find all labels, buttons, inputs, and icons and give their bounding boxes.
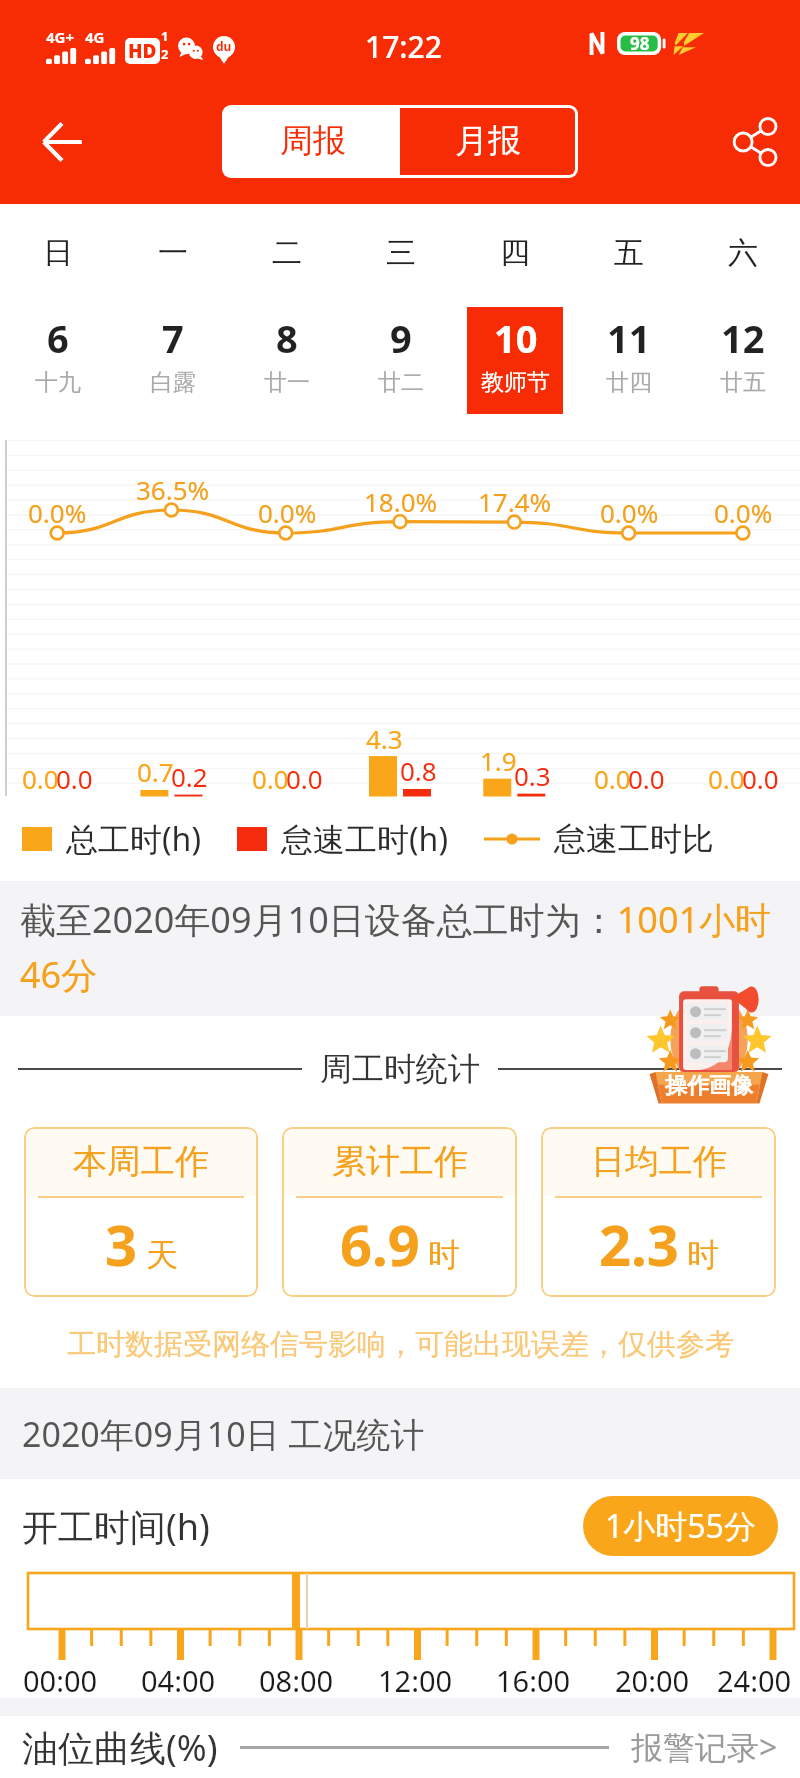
button[interactable]: 日均工作: [541, 1127, 776, 1297]
staticText: 0.0: [56, 761, 93, 796]
staticText: 3: [105, 1206, 138, 1282]
button[interactable]: 7: [125, 307, 221, 414]
staticText: 廿一: [264, 368, 310, 397]
staticText: 总工时(h): [66, 817, 201, 861]
staticText: 0.0: [742, 761, 779, 796]
staticText: 04:00: [141, 1661, 216, 1700]
staticText: 0.7: [137, 754, 174, 789]
staticText: 9: [390, 312, 412, 364]
staticText: 0.0%: [714, 495, 773, 530]
staticText: 6.9: [340, 1206, 420, 1282]
staticText: 白露: [150, 368, 196, 397]
staticText: 六: [728, 234, 758, 272]
staticText: 十九: [35, 368, 81, 397]
staticText: 廿四: [606, 368, 652, 397]
staticText: 截至2020年09月10日设备总工时为：1001小时46分: [20, 895, 785, 999]
staticText: 开工时间(h): [22, 1502, 210, 1551]
staticText: 操作画像: [665, 1072, 753, 1100]
staticText: 教师节: [481, 368, 550, 397]
staticText: 工时数据受网络信号影响，可能出现误差，仅供参考: [67, 1326, 734, 1363]
staticText: 0.0%: [28, 495, 87, 530]
staticText: 周工时统计: [320, 1049, 480, 1089]
staticText: 1小时55分: [605, 1504, 756, 1548]
staticText: 12: [721, 312, 765, 364]
staticText: 36.5%: [136, 472, 210, 507]
staticText: 12:00: [378, 1661, 453, 1700]
staticText: 三: [386, 234, 416, 272]
staticText: 20:00: [615, 1661, 690, 1700]
staticText: 累计工作: [332, 1140, 468, 1183]
staticText: 0.0: [22, 761, 59, 796]
staticText: 周报: [280, 120, 346, 162]
staticText: 4.3: [366, 721, 403, 756]
staticText: 16:00: [496, 1661, 571, 1700]
staticText: 1.9: [480, 743, 517, 778]
staticText: 4G: [85, 27, 105, 47]
button[interactable]: 1小时55分: [583, 1496, 778, 1556]
staticText: 0.8: [400, 753, 437, 788]
button[interactable]: 6: [10, 307, 106, 414]
staticText: 0.0%: [258, 495, 317, 530]
staticText: 0.2: [171, 759, 208, 794]
staticText: 08:00: [259, 1661, 334, 1700]
staticText: 17.4%: [478, 484, 552, 519]
staticText: 报警记录>: [631, 1725, 778, 1769]
button[interactable]: Share: [716, 102, 796, 182]
button[interactable]: 10: [467, 307, 563, 414]
button[interactable]: 月报: [400, 108, 575, 175]
staticText: 11: [607, 312, 651, 364]
button[interactable]: Back: [22, 102, 102, 182]
staticText: 0.0: [252, 761, 289, 796]
button[interactable]: 8: [239, 307, 335, 414]
button[interactable]: 11: [581, 307, 677, 414]
staticText: 日: [43, 234, 73, 272]
staticText: 廿二: [378, 368, 424, 397]
button[interactable]: 12: [695, 307, 791, 414]
button[interactable]: 累计工作: [282, 1127, 517, 1297]
staticText: 24:00: [717, 1661, 792, 1700]
staticText: 油位曲线(%): [22, 1723, 218, 1772]
staticText: 98: [630, 32, 650, 55]
staticText: 7: [162, 312, 184, 364]
staticText: 0.0: [286, 761, 323, 796]
button[interactable]: 周报: [225, 108, 400, 175]
staticText: 00:00: [23, 1661, 98, 1700]
staticText: 0.0%: [600, 495, 659, 530]
staticText: 怠速工时(h): [281, 817, 448, 861]
staticText: 二: [272, 234, 302, 272]
staticText: 17:22: [365, 26, 442, 67]
staticText: 4G+: [46, 27, 75, 47]
staticText: 2: [161, 45, 169, 63]
staticText: 时: [428, 1235, 460, 1275]
staticText: 0.3: [514, 758, 551, 793]
staticText: 日均工作: [591, 1140, 727, 1183]
staticText: 2020年09月10日 工况统计: [22, 1411, 425, 1457]
staticText: 四: [500, 234, 530, 272]
staticText: 月报: [455, 120, 521, 162]
staticText: 8: [276, 312, 298, 364]
staticText: 0.0: [594, 761, 631, 796]
staticText: 本周工作: [73, 1140, 209, 1183]
staticText: 一: [158, 234, 188, 272]
staticText: du: [216, 38, 232, 54]
staticText: 廿五: [720, 368, 766, 397]
staticText: 18.0%: [364, 484, 438, 519]
button[interactable]: 9: [353, 307, 449, 414]
staticText: 2.3: [599, 1206, 679, 1282]
staticText: 时: [687, 1235, 719, 1275]
staticText: HD: [128, 38, 157, 64]
staticText: 6: [47, 312, 69, 364]
staticText: 0.0: [628, 761, 665, 796]
staticText: 0.0: [708, 761, 745, 796]
staticText: 天: [146, 1235, 178, 1275]
staticText: 怠速工时比: [554, 819, 714, 859]
staticText: 1: [161, 27, 169, 45]
staticText: 五: [614, 234, 644, 272]
staticText: 10: [494, 312, 538, 364]
button[interactable]: 本周工作: [24, 1127, 258, 1297]
